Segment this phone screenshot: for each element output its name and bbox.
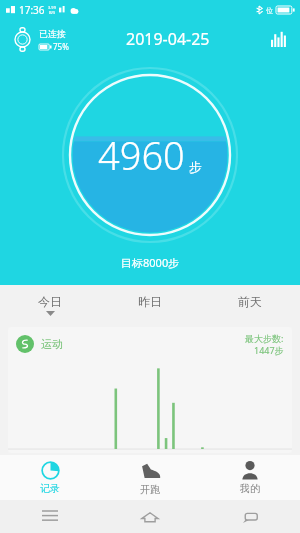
staticText: 最大步数: xyxy=(245,332,284,344)
button[interactable]: 记录 xyxy=(0,458,100,498)
staticText: 17:36 xyxy=(19,3,45,17)
button[interactable]: Statistics xyxy=(266,26,292,52)
staticText: 4960 xyxy=(98,129,185,181)
staticText: 我的 xyxy=(240,482,260,495)
staticText: 3.99 xyxy=(48,5,56,10)
staticText: 步 xyxy=(189,159,202,175)
button[interactable]: Back xyxy=(200,500,300,533)
staticText: 开跑 xyxy=(140,483,160,496)
staticText: 前天 xyxy=(238,294,262,309)
staticText: B/S xyxy=(49,10,56,15)
button[interactable]: 我的 xyxy=(200,457,300,498)
button[interactable]: Home xyxy=(100,500,200,533)
button[interactable]: Menu xyxy=(0,500,100,533)
button[interactable]: 开跑 xyxy=(100,457,200,499)
staticText: 位 xyxy=(266,6,273,15)
staticText: 目标8000步 xyxy=(121,255,180,270)
button[interactable]: 运动 xyxy=(8,327,292,453)
staticText: 75% xyxy=(53,41,69,52)
button[interactable]: 已连接 xyxy=(8,25,71,54)
staticText: 运动 xyxy=(41,337,63,351)
button[interactable]: 今日 xyxy=(0,285,100,325)
staticText: 1447步 xyxy=(254,344,284,356)
staticText: 已连接 xyxy=(39,28,66,39)
staticText: 今日 xyxy=(38,294,62,309)
button[interactable]: 昨日 xyxy=(100,285,200,325)
staticText: 2019-04-25 xyxy=(126,28,210,50)
button[interactable]: 前天 xyxy=(200,285,300,325)
staticText: 昨日 xyxy=(138,294,162,309)
staticText: 记录 xyxy=(40,482,60,495)
